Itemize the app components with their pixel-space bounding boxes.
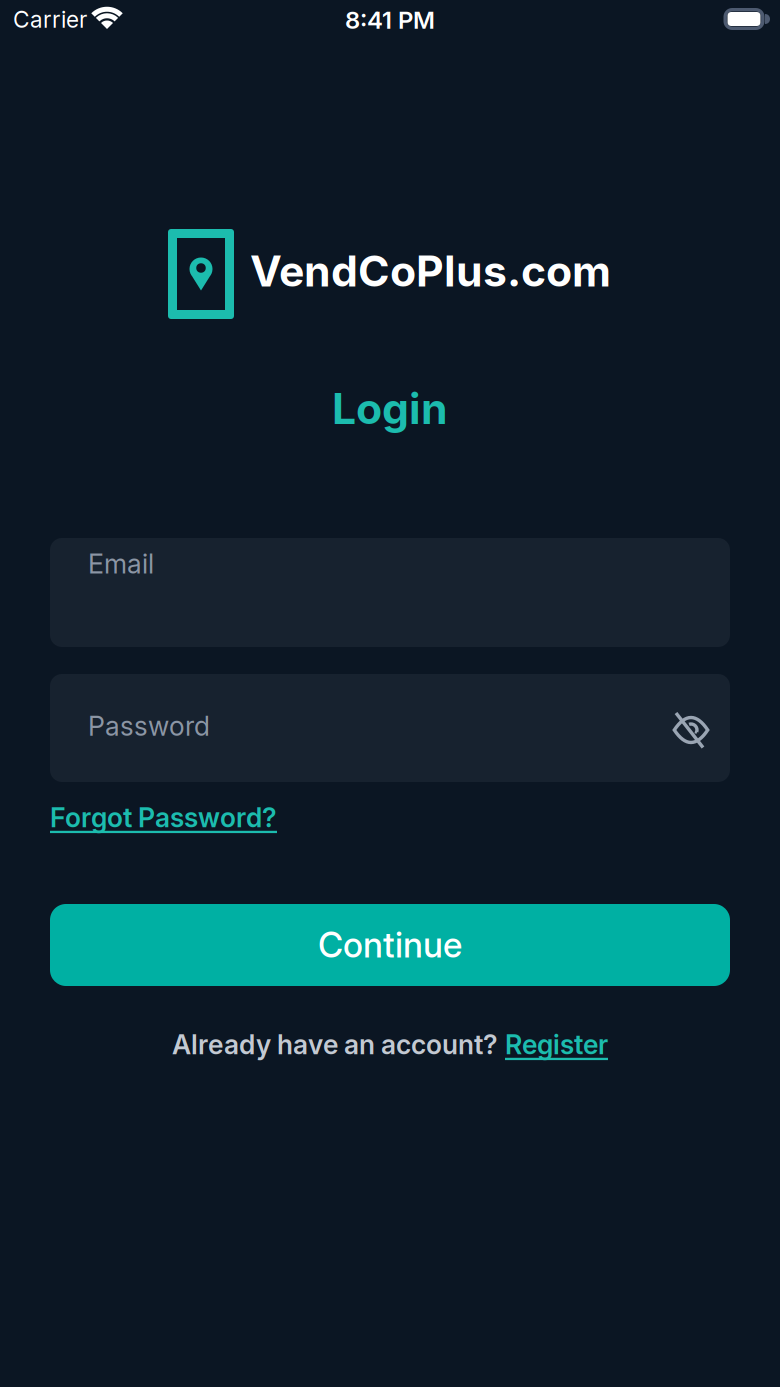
staticText: Password (88, 710, 210, 742)
staticText: VendCoPlus.com (250, 246, 611, 296)
staticText: Forgot Password? (50, 802, 277, 833)
staticText: Carrier (13, 6, 87, 33)
staticText: Login (332, 383, 448, 434)
staticText: 8:41 PM (345, 6, 435, 34)
button[interactable]: Email (50, 538, 730, 647)
button[interactable] (672, 712, 710, 744)
staticText: Continue (318, 925, 462, 965)
staticText: Register (505, 1029, 608, 1060)
button[interactable]: Register (505, 1029, 608, 1060)
button[interactable]: Forgot Password? (50, 802, 730, 833)
staticText: Email (88, 548, 154, 579)
button[interactable]: Continue (50, 904, 730, 986)
button[interactable]: Password (50, 674, 730, 782)
staticText: Already have an account? (172, 1029, 498, 1060)
